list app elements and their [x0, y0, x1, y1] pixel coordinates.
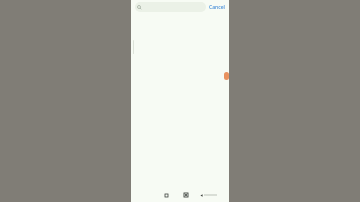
- button[interactable]: Accent marker: [224, 72, 229, 80]
- button[interactable]: Cancel: [208, 3, 226, 12]
- staticText: Cancel: [209, 4, 225, 11]
- other: Search: [137, 5, 142, 10]
- button[interactable]: Back: [200, 190, 217, 200]
- button[interactable]: Search: [135, 2, 206, 12]
- button[interactable]: Recent apps: [161, 190, 171, 200]
- button[interactable]: Home: [181, 190, 191, 200]
